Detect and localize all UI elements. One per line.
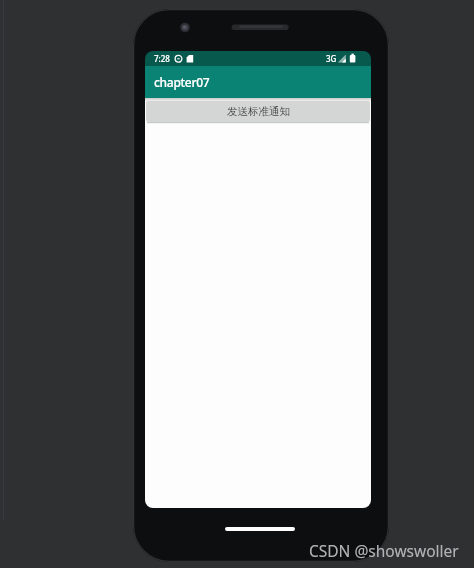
staticText: 3G [326,53,337,64]
staticText: 发送标准通知 [227,105,290,118]
staticText: CSDN @showswoller [309,540,459,561]
staticText: 7:28 [154,53,170,64]
button[interactable]: 发送标准通知 [146,101,370,122]
staticText: chapter07 [154,74,210,90]
